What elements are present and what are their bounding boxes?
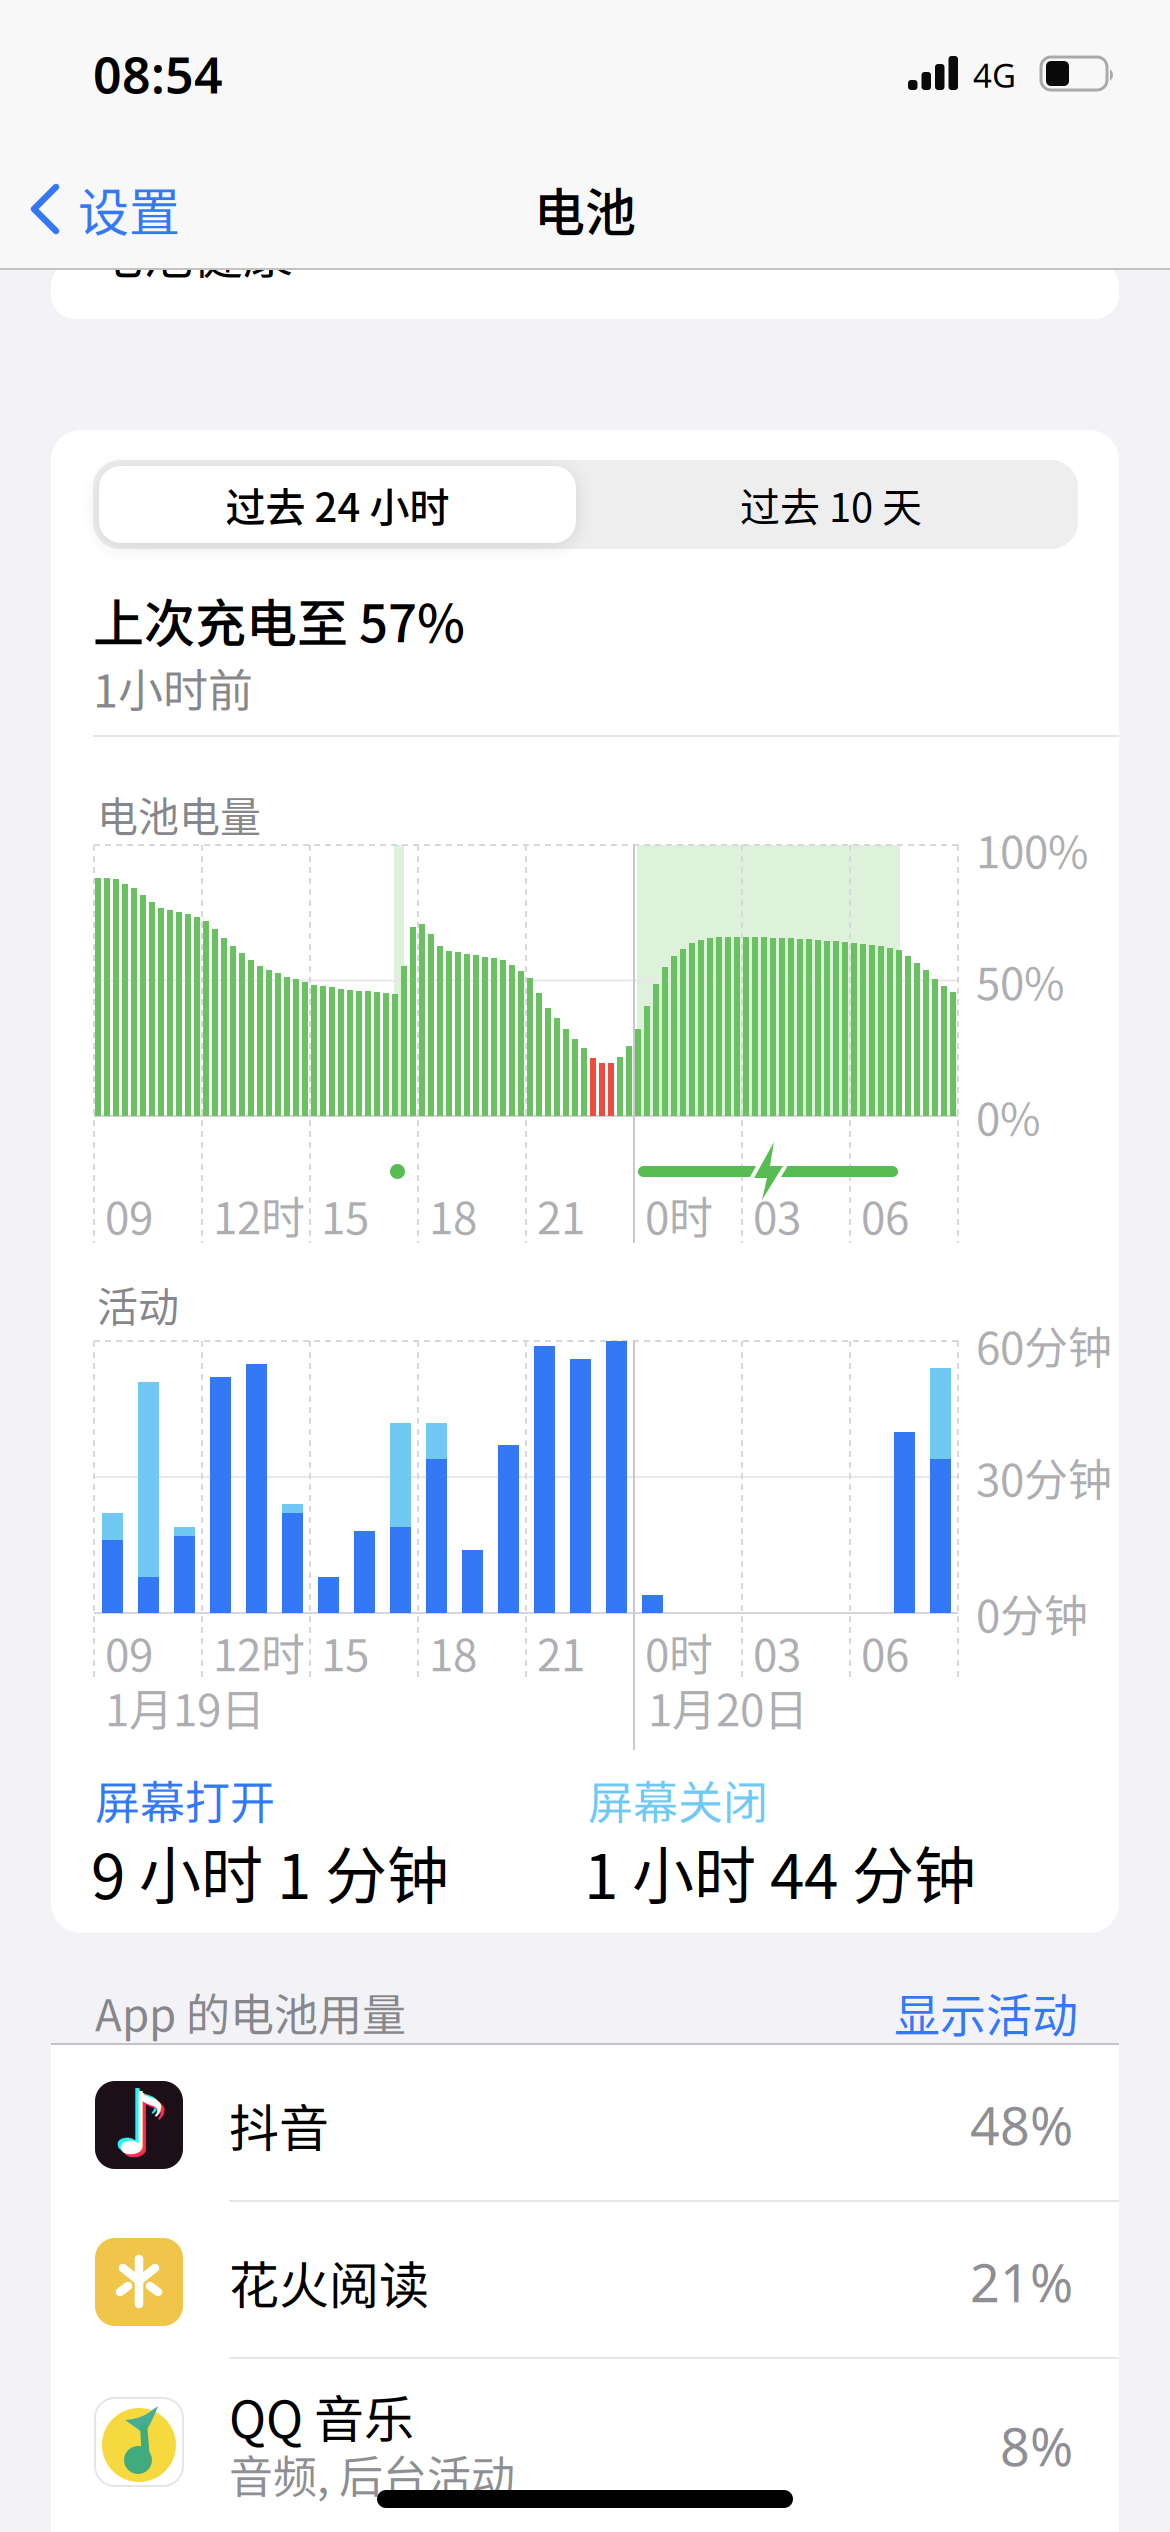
staticText: QQ 音乐 [229, 2380, 414, 2452]
staticText: 18 [429, 1183, 477, 1247]
button[interactable]: 设置 [30, 172, 180, 246]
button[interactable]: QQ 音乐 [51, 2359, 1119, 2532]
staticText: 上次充电至 57% [93, 583, 465, 657]
staticText: 15 [321, 1183, 369, 1247]
staticText: 15 [321, 1620, 369, 1684]
staticText: 06 [861, 1620, 909, 1684]
staticText: 21 [537, 1183, 585, 1247]
staticText: 21% [970, 2247, 1073, 2317]
staticText: 屏幕关闭 [588, 1767, 768, 1833]
staticText: ♪ [110, 2071, 165, 2171]
staticText: 电池健康 [93, 216, 293, 288]
staticText: 1 小时 44 分钟 [584, 1827, 976, 1917]
staticText: 1小时前 [93, 655, 253, 721]
staticText: 音频, 后台活动 [229, 2442, 515, 2506]
staticText: 活动 [97, 1274, 179, 1334]
staticText: 12时 [213, 1183, 305, 1247]
staticText: 50% [976, 949, 1065, 1012]
button[interactable]: 过去 10 天 [596, 466, 1066, 543]
staticText: 18 [429, 1620, 477, 1684]
button[interactable]: ♪ [51, 2045, 1119, 2202]
staticText: 过去 10 天 [740, 475, 922, 533]
staticText: 48% [970, 2090, 1073, 2160]
staticText: 06 [861, 1183, 909, 1247]
staticText: 1月19日 [105, 1675, 265, 1739]
staticText: 09 [105, 1620, 153, 1684]
staticText: 30分钟 [976, 1445, 1112, 1509]
staticText: 4G [973, 52, 1016, 97]
button[interactable]: 电池健康 [51, 262, 1119, 319]
staticText: 09 [105, 1183, 153, 1247]
staticText: 03 [753, 1620, 801, 1684]
staticText: 过去 24 小时 [225, 475, 449, 533]
button[interactable]: 过去 24 小时 [99, 466, 576, 543]
staticText: 0% [976, 1084, 1041, 1148]
staticText: ♪ [113, 2074, 168, 2174]
staticText: 屏幕打开 [95, 1767, 275, 1833]
staticText: 花火阅读 [229, 2246, 429, 2318]
staticText: 12时 [213, 1620, 305, 1684]
staticText: 60分钟 [976, 1313, 1112, 1377]
staticText: 电池 [534, 172, 636, 246]
button[interactable]: 显示活动 [894, 1979, 1078, 2045]
staticText: App 的电池用量 [95, 1980, 406, 2044]
staticText: 0时 [645, 1620, 713, 1684]
staticText: 100% [976, 817, 1089, 881]
staticText: 设置 [78, 172, 180, 246]
button[interactable]: 花火阅读 [51, 2202, 1119, 2359]
staticText: 08:54 [93, 40, 223, 108]
staticText: ♪ [116, 2077, 171, 2177]
staticText: 电池电量 [97, 784, 261, 844]
staticText: 1月20日 [648, 1675, 808, 1739]
staticText: 显示活动 [894, 1979, 1078, 2045]
staticText: 抖音 [229, 2089, 329, 2161]
staticText: 21 [537, 1620, 585, 1684]
staticText: 9 小时 1 分钟 [91, 1827, 449, 1917]
staticText: 8% [1000, 2411, 1073, 2481]
staticText: 03 [753, 1183, 801, 1247]
staticText: 0时 [645, 1183, 713, 1247]
staticText: 0分钟 [976, 1581, 1088, 1645]
